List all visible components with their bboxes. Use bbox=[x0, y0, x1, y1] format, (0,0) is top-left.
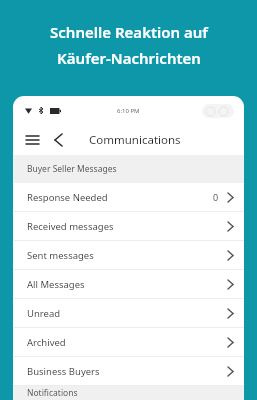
staticText: Schnelle Reaktion auf bbox=[50, 22, 208, 42]
button[interactable]: Sent messages bbox=[13, 241, 244, 269]
staticText: Notifications bbox=[27, 387, 78, 399]
button[interactable]: Menu bbox=[20, 128, 44, 152]
button[interactable]: Unread bbox=[13, 299, 244, 327]
staticText: Käufer-Nachrichten bbox=[57, 48, 201, 68]
staticText: Received messages bbox=[27, 220, 228, 233]
staticText: Business Buyers bbox=[27, 365, 228, 378]
staticText: All Messages bbox=[27, 278, 228, 291]
button[interactable]: Response Needed bbox=[13, 183, 244, 211]
staticText: Sent messages bbox=[27, 249, 228, 262]
staticText: Unread bbox=[27, 307, 228, 320]
staticText: Response Needed bbox=[27, 191, 213, 204]
staticText: Buyer Seller Messages bbox=[27, 163, 117, 175]
staticText: 0 bbox=[213, 191, 219, 203]
button[interactable]: Back bbox=[47, 129, 69, 151]
staticText: 6:10 PM bbox=[117, 107, 140, 115]
button[interactable]: Business Buyers bbox=[13, 357, 244, 385]
button[interactable]: All Messages bbox=[13, 270, 244, 298]
staticText: Communications bbox=[89, 132, 181, 148]
button[interactable]: Archived bbox=[13, 328, 244, 356]
button[interactable]: Received messages bbox=[13, 212, 244, 240]
staticText: Archived bbox=[27, 336, 228, 349]
